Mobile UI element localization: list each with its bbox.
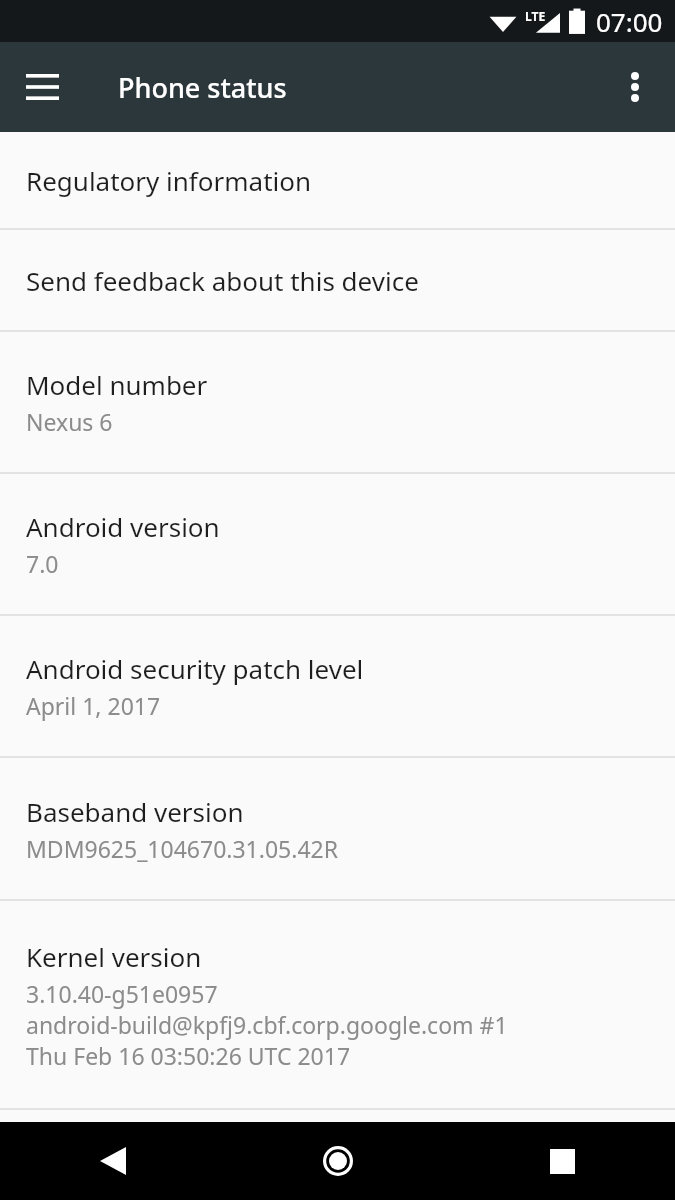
staticText: 07:00 — [596, 4, 663, 39]
staticText: Nexus 6 — [26, 406, 113, 437]
staticText: MDM9625_104670.31.05.42R — [26, 833, 339, 864]
staticText: Kernel version — [26, 939, 202, 974]
button[interactable]: Recent apps — [450, 1122, 675, 1200]
staticText: Phone status — [118, 69, 287, 106]
button[interactable]: More options — [603, 55, 667, 119]
button[interactable]: Send feedback about this device — [0, 230, 675, 330]
staticText: LTE — [525, 8, 546, 24]
button[interactable]: Android version — [0, 474, 675, 614]
staticText: Android version — [26, 509, 220, 544]
staticText: 3.10.40-g51e0957 — [26, 978, 218, 1009]
button[interactable]: Open navigation drawer — [8, 53, 76, 121]
staticText: Android security patch level — [26, 651, 364, 686]
staticText: Regulatory information — [26, 163, 312, 198]
staticText: 7.0 — [26, 548, 59, 579]
button[interactable]: Regulatory information — [0, 132, 675, 228]
button[interactable]: Model number — [0, 332, 675, 472]
button[interactable]: Kernel version — [0, 901, 675, 1108]
staticText: Model number — [26, 367, 208, 402]
staticText: Send feedback about this device — [26, 263, 419, 298]
staticText: android-build@kpfj9.cbf.corp.google.com … — [26, 1009, 508, 1040]
staticText: Baseband version — [26, 794, 244, 829]
button[interactable]: Home — [225, 1122, 450, 1200]
staticText: Thu Feb 16 03:50:26 UTC 2017 — [26, 1040, 351, 1071]
staticText: April 1, 2017 — [26, 690, 161, 721]
button[interactable]: Baseband version — [0, 758, 675, 899]
button[interactable]: Back — [0, 1122, 225, 1200]
button[interactable]: Android security patch level — [0, 616, 675, 756]
